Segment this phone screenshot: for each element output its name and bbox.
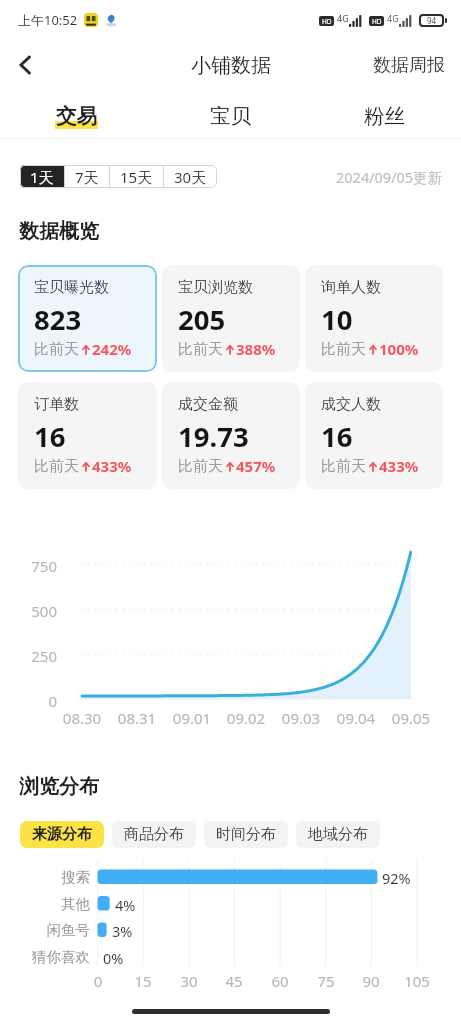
staticText: 105 bbox=[392, 971, 442, 991]
staticText: 2024/09/05更新 bbox=[336, 167, 443, 187]
staticText: 09.05 bbox=[381, 708, 441, 728]
staticText: 比前天 bbox=[178, 457, 223, 476]
staticText: 60 bbox=[255, 971, 305, 991]
staticText: 粉丝 bbox=[364, 103, 405, 129]
staticText: 433% bbox=[379, 456, 419, 476]
staticText: 比前天 bbox=[321, 457, 366, 476]
staticText: 0 bbox=[14, 691, 57, 711]
staticText: 16 bbox=[34, 418, 66, 455]
staticText: 时间分布 bbox=[216, 825, 276, 844]
staticText: 浏览分布 bbox=[19, 774, 99, 799]
staticText: 4% bbox=[115, 895, 136, 915]
staticText: 成交人数 bbox=[321, 395, 381, 414]
staticText: 75 bbox=[301, 971, 351, 991]
staticText: 388% bbox=[236, 339, 276, 359]
staticText: 数据周报 bbox=[373, 54, 445, 77]
button[interactable]: 交易 bbox=[0, 92, 153, 140]
staticText: 457% bbox=[236, 456, 276, 476]
staticText: 上午10:52 bbox=[18, 11, 78, 29]
staticText: 16 bbox=[321, 418, 353, 455]
staticText: 比前天 bbox=[321, 340, 366, 359]
staticText: HD bbox=[322, 17, 332, 26]
staticText: 商品分布 bbox=[124, 825, 184, 844]
staticText: 500 bbox=[14, 601, 57, 621]
button[interactable]: 粉丝 bbox=[307, 92, 461, 140]
staticText: 30 bbox=[164, 971, 214, 991]
staticText: 7天 bbox=[75, 167, 99, 187]
staticText: 3% bbox=[112, 921, 133, 941]
staticText: 09.03 bbox=[271, 708, 331, 728]
staticText: 750 bbox=[14, 556, 57, 576]
button[interactable]: 30天 bbox=[164, 165, 217, 188]
staticText: 其他 bbox=[10, 895, 90, 913]
button[interactable]: 地域分布 bbox=[296, 821, 380, 848]
staticText: 433% bbox=[92, 456, 132, 476]
staticText: 宝贝曝光数 bbox=[34, 278, 109, 297]
staticText: 94 bbox=[427, 15, 437, 26]
staticText: 08.30 bbox=[52, 708, 112, 728]
staticText: 823 bbox=[34, 301, 82, 338]
staticText: 100% bbox=[379, 339, 419, 359]
button[interactable]: 宝贝浏览数 bbox=[162, 265, 300, 372]
staticText: 92% bbox=[382, 868, 411, 888]
button[interactable]: 商品分布 bbox=[112, 821, 196, 848]
staticText: 询单人数 bbox=[321, 278, 381, 297]
staticText: 15 bbox=[118, 971, 168, 991]
staticText: 猜你喜欢 bbox=[10, 948, 90, 966]
staticText: 宝贝浏览数 bbox=[178, 278, 253, 297]
button[interactable]: 询单人数 bbox=[305, 265, 443, 372]
button[interactable]: 1天 bbox=[20, 165, 64, 188]
staticText: 0% bbox=[103, 948, 124, 968]
staticText: 数据概览 bbox=[19, 219, 99, 244]
button[interactable]: 15天 bbox=[110, 165, 163, 188]
staticText: 242% bbox=[92, 339, 132, 359]
staticText: 来源分布 bbox=[32, 825, 92, 844]
staticText: 搜索 bbox=[10, 868, 90, 886]
button[interactable]: 来源分布 bbox=[20, 821, 104, 848]
staticText: 250 bbox=[14, 646, 57, 666]
staticText: 0 bbox=[73, 971, 123, 991]
button[interactable]: 宝贝曝光数 bbox=[18, 265, 157, 372]
staticText: 地域分布 bbox=[308, 825, 368, 844]
staticText: 90 bbox=[346, 971, 396, 991]
button[interactable]: 7天 bbox=[65, 165, 109, 188]
button[interactable]: 订单数 bbox=[18, 382, 157, 489]
staticText: 1天 bbox=[30, 167, 54, 187]
staticText: 成交金额 bbox=[178, 395, 238, 414]
staticText: 15天 bbox=[120, 167, 153, 187]
button[interactable]: 时间分布 bbox=[204, 821, 288, 848]
button[interactable]: 成交人数 bbox=[305, 382, 443, 489]
staticText: 4G bbox=[387, 12, 399, 24]
staticText: 19.73 bbox=[178, 418, 249, 455]
staticText: 09.01 bbox=[162, 708, 222, 728]
staticText: 比前天 bbox=[34, 340, 79, 359]
staticText: 09.04 bbox=[326, 708, 386, 728]
staticText: 09.02 bbox=[216, 708, 276, 728]
staticText: 205 bbox=[178, 301, 226, 338]
staticText: HD bbox=[372, 17, 382, 26]
button[interactable]: 宝贝 bbox=[153, 92, 307, 140]
button[interactable]: 成交金额 bbox=[162, 382, 300, 489]
staticText: 08.31 bbox=[107, 708, 167, 728]
button[interactable]: 数据周报 bbox=[357, 44, 461, 87]
button[interactable]: Back bbox=[4, 43, 48, 87]
staticText: 闲鱼号 bbox=[10, 921, 90, 939]
staticText: 45 bbox=[209, 971, 259, 991]
staticText: 比前天 bbox=[34, 457, 79, 476]
staticText: 小铺数据 bbox=[191, 53, 271, 78]
staticText: 比前天 bbox=[178, 340, 223, 359]
staticText: 交易 bbox=[56, 103, 97, 129]
staticText: 订单数 bbox=[34, 395, 79, 414]
staticText: 宝贝 bbox=[210, 103, 251, 129]
staticText: 4G bbox=[337, 12, 349, 24]
staticText: 30天 bbox=[174, 167, 207, 187]
staticText: 10 bbox=[321, 301, 353, 338]
